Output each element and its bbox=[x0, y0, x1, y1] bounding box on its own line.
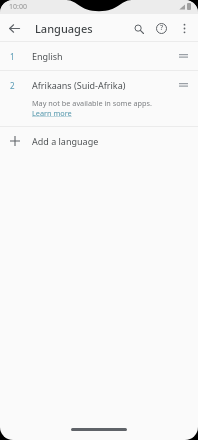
button[interactable]: Reorder bbox=[175, 79, 191, 90]
button[interactable]: Search bbox=[127, 17, 150, 40]
staticText: English bbox=[32, 50, 63, 62]
button[interactable]: More options bbox=[173, 17, 196, 40]
staticText: May not be available in some apps. Learn… bbox=[32, 98, 170, 118]
button[interactable]: Help bbox=[150, 17, 173, 40]
staticText: Languages bbox=[35, 21, 93, 36]
staticText: Afrikaans (Suid-Afrika) bbox=[32, 79, 126, 91]
button[interactable]: 1 bbox=[0, 42, 198, 70]
button[interactable]: Back bbox=[0, 14, 28, 42]
button[interactable]: 2 bbox=[0, 71, 198, 126]
button[interactable]: Add a language bbox=[0, 127, 198, 155]
staticText: 10:00 bbox=[9, 2, 27, 12]
staticText: 2 bbox=[10, 80, 15, 91]
staticText: 1 bbox=[10, 51, 15, 62]
button[interactable]: Reorder bbox=[175, 50, 191, 61]
staticText: Add a language bbox=[32, 135, 99, 147]
staticText: ? bbox=[160, 23, 164, 33]
